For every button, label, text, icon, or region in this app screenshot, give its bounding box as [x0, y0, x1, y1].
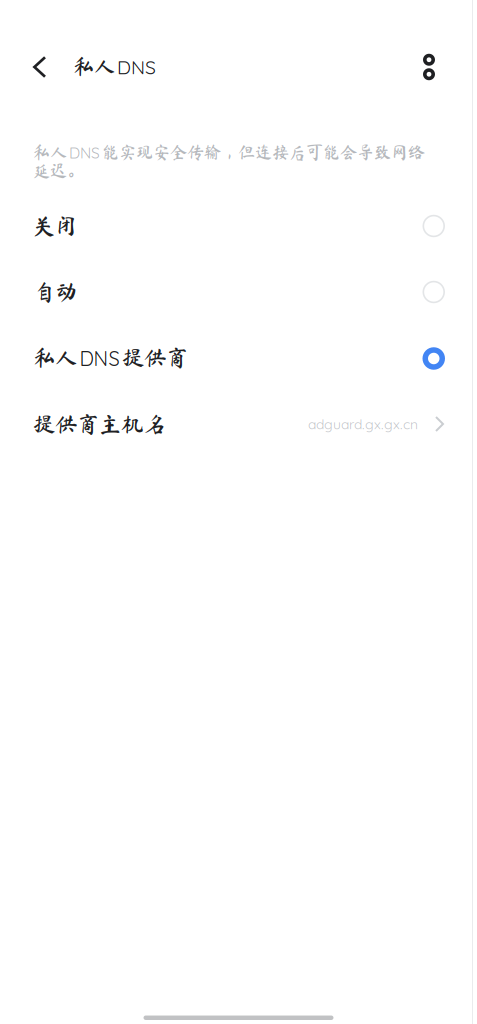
staticText: DNS: [117, 55, 156, 79]
button[interactable]: 私人: [0, 325, 477, 392]
staticText: 自动: [33, 281, 77, 303]
button[interactable]: More options: [381, 39, 477, 95]
button[interactable]: Back: [0, 39, 73, 95]
staticText: 提供商主机名: [33, 413, 165, 435]
staticText: 提供商: [122, 346, 188, 369]
staticText: 私人: [33, 346, 77, 369]
staticText: 私人: [33, 143, 67, 160]
staticText: DNS: [79, 346, 119, 371]
staticText: 私人: [73, 55, 115, 77]
staticText: 关闭: [33, 215, 77, 237]
staticText: DNS: [69, 143, 100, 162]
staticText: 能实现安全传输，但连接后可能会导致网络: [102, 143, 425, 160]
staticText: adguard.gx.gx.cn: [308, 415, 418, 433]
button[interactable]: 提供商主机名: [0, 392, 477, 456]
button[interactable]: 关闭: [0, 193, 477, 259]
button[interactable]: 自动: [0, 259, 477, 325]
staticText: 延迟。: [33, 162, 84, 179]
